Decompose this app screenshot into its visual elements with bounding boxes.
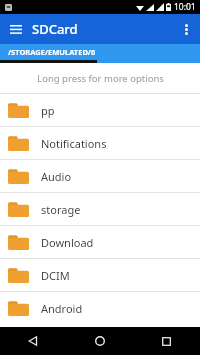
staticText: Android [41,301,83,316]
button[interactable]: Notifications [0,126,200,159]
button[interactable]: /STORAGE/EMULATED/0 [0,44,200,60]
staticText: Audio [41,169,72,184]
staticText: storage [41,202,81,217]
button[interactable]: pp [0,93,200,126]
staticText: Download [41,235,94,250]
staticText: SDCard [32,20,78,38]
staticText: pp [41,103,55,118]
staticText: DCIM [41,268,70,283]
staticText: /STORAGE/EMULATED/0 [8,47,96,57]
staticText: Notifications [41,136,107,151]
button[interactable]: More options [176,19,196,39]
button[interactable]: Back [0,327,66,355]
button[interactable]: Download [0,225,200,258]
button[interactable]: Android [0,291,200,324]
button[interactable]: Open navigation drawer [6,19,26,39]
button[interactable]: Home [66,327,133,355]
staticText: Long press for more options [37,72,164,85]
button[interactable]: Audio [0,159,200,192]
staticText: 10:01 [174,1,196,13]
button[interactable]: Recent apps [133,327,200,355]
button[interactable]: storage [0,192,200,225]
button[interactable]: DCIM [0,258,200,291]
